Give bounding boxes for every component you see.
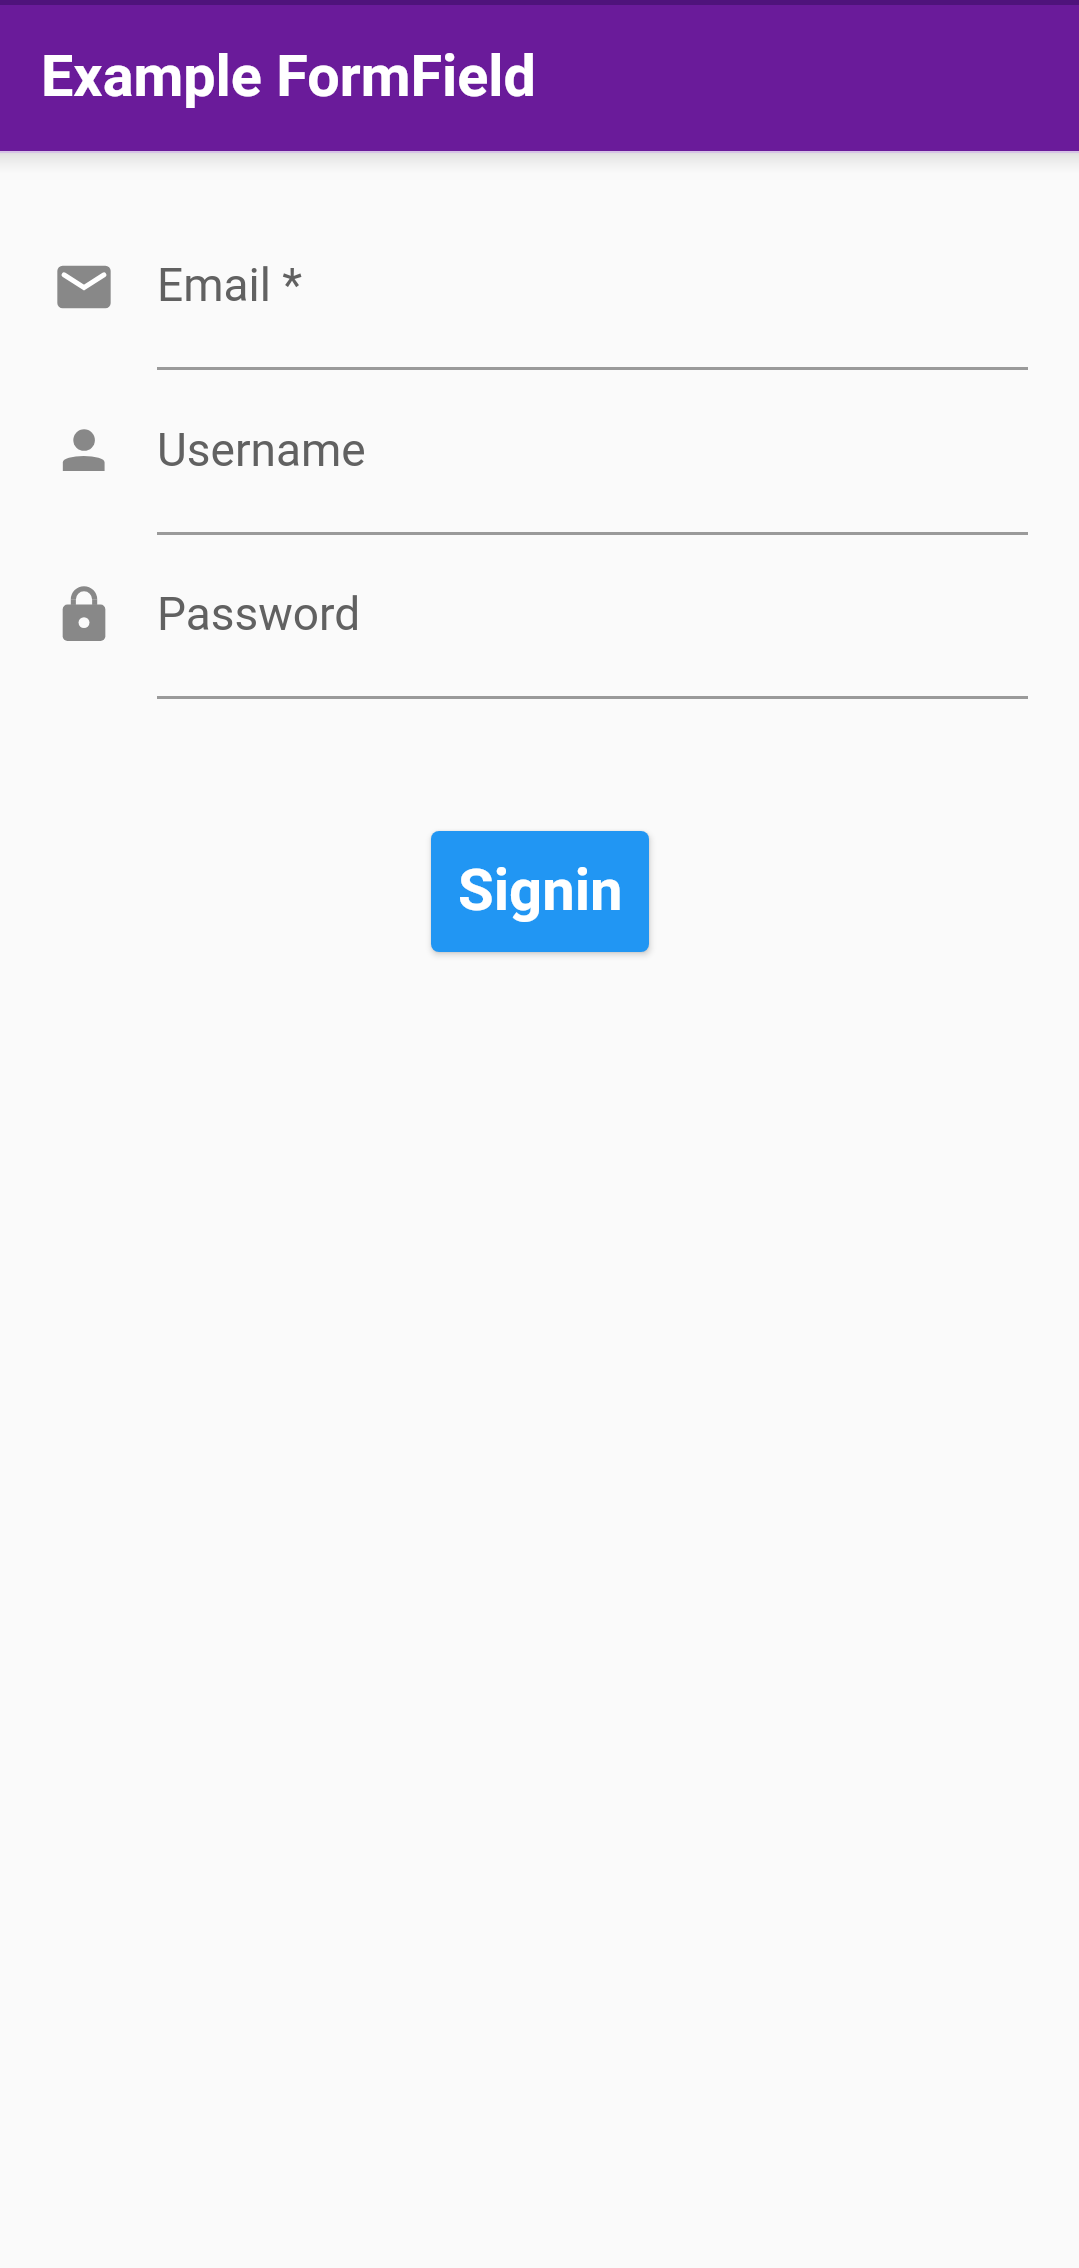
button[interactable]: Signin [431,831,649,952]
staticText: Username [157,423,366,477]
staticText: Example FormField [41,43,537,110]
staticText: Signin [458,856,623,924]
staticText: Email * [157,258,303,312]
other: Username [52,419,116,483]
button[interactable]: Password [157,579,1028,699]
staticText: Password [157,587,361,641]
other: Password [52,583,116,647]
button[interactable]: Email * [157,250,1028,370]
other: Email * [52,255,116,319]
button[interactable]: Username [157,415,1028,535]
